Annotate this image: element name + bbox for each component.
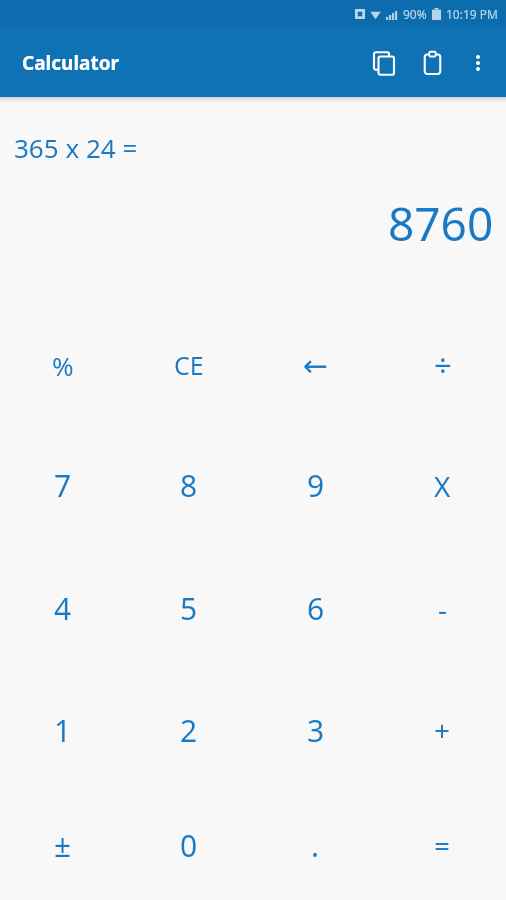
staticText: 8760 [388, 192, 494, 255]
staticText: 0 [180, 825, 198, 866]
staticText: 3 [307, 710, 325, 751]
button[interactable]: = [379, 790, 506, 900]
button[interactable]: ± [0, 790, 126, 900]
staticText: 8 [180, 465, 198, 506]
staticText: - [438, 590, 448, 628]
button[interactable]: 8 [126, 424, 252, 547]
button[interactable]: 1 [0, 670, 126, 790]
staticText: 6 [307, 588, 325, 629]
button[interactable]: 7 [0, 424, 126, 547]
staticText: 7 [54, 465, 72, 506]
staticText: CE [174, 348, 204, 382]
button[interactable]: 4 [0, 547, 126, 670]
staticText: = [434, 826, 451, 864]
button[interactable]: ÷ [379, 306, 506, 424]
button[interactable]: More options [456, 41, 500, 85]
staticText: . [311, 825, 320, 866]
staticText: 90% [403, 6, 427, 22]
staticText: ÷ [434, 344, 452, 386]
staticText: 10:19 PM [446, 6, 498, 22]
staticText: % [52, 348, 74, 383]
staticText: Calculator [22, 50, 120, 76]
button[interactable]: % [0, 306, 126, 424]
staticText: ← [303, 348, 329, 383]
button[interactable]: - [379, 547, 506, 670]
staticText: + [434, 711, 451, 749]
button[interactable]: CE [126, 306, 252, 424]
button[interactable]: 2 [126, 670, 252, 790]
button[interactable]: 9 [252, 424, 379, 547]
button[interactable]: Paste [408, 39, 456, 87]
button[interactable]: ← [252, 306, 379, 424]
button[interactable]: + [379, 670, 506, 790]
staticText: 5 [180, 588, 198, 629]
button[interactable]: 3 [252, 670, 379, 790]
button[interactable]: 6 [252, 547, 379, 670]
staticText: 1 [54, 710, 72, 751]
button[interactable]: Copy [360, 39, 408, 87]
button[interactable]: 5 [126, 547, 252, 670]
staticText: 2 [180, 710, 198, 751]
button[interactable]: . [252, 790, 379, 900]
button[interactable]: X [379, 424, 506, 547]
staticText: X [434, 467, 451, 505]
staticText: 9 [307, 465, 325, 506]
staticText: 4 [54, 588, 72, 629]
staticText: ± [54, 825, 72, 866]
staticText: 365 x 24 = [14, 130, 138, 165]
button[interactable]: 0 [126, 790, 252, 900]
